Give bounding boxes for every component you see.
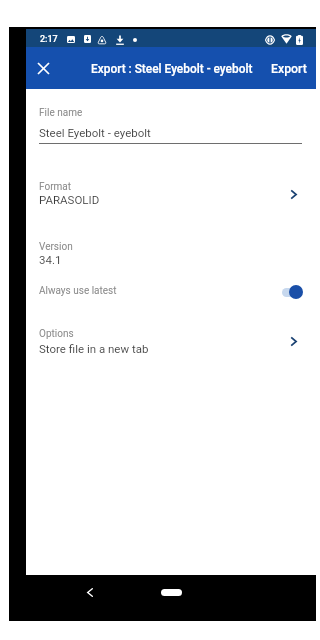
staticText: Export : Steel Eyebolt - eyebolt [91,62,253,76]
button[interactable]: Home [153,582,190,603]
staticText: File name [39,107,83,119]
staticText: 34.1 [39,253,62,266]
staticText: Version [39,241,73,253]
button[interactable]: Close [28,53,58,83]
button[interactable]: Back [79,581,101,603]
button[interactable]: Format [26,174,316,208]
button[interactable]: Always use latest [26,275,316,301]
staticText: PARASOLID [39,193,100,206]
staticText: Export [271,62,307,76]
staticText: Always use latest [39,285,117,297]
staticText: Steel Eyebolt - eyebolt [39,126,151,139]
button[interactable]: File name [26,100,316,146]
button[interactable]: Options [26,321,316,355]
staticText: Store file in a new tab [39,342,149,355]
button[interactable]: Export [262,54,316,84]
staticText: 2:17 [40,34,58,45]
staticText: Format [39,181,71,193]
staticText: Options [39,328,74,340]
